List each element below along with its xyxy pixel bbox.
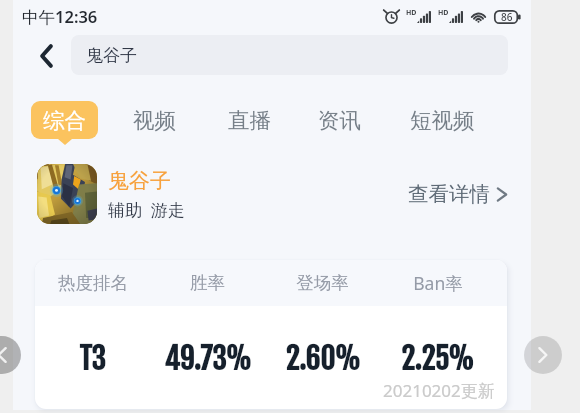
- staticText: 2.60%: [285, 341, 361, 377]
- button[interactable]: 资讯: [306, 101, 372, 139]
- staticText: 登场率: [296, 272, 349, 294]
- staticText: 综合: [43, 107, 86, 134]
- button[interactable]: 查看详情: [404, 173, 512, 215]
- staticText: HD: [438, 8, 449, 18]
- staticText: T3: [79, 341, 106, 377]
- staticText: 辅助 游走: [108, 198, 185, 221]
- staticText: 查看详情: [408, 181, 490, 207]
- button[interactable]: 鬼谷子: [71, 35, 508, 75]
- button[interactable]: Previous page: [0, 336, 21, 374]
- staticText: HD: [406, 8, 417, 18]
- staticText: 鬼谷子: [108, 168, 171, 194]
- staticText: 视频: [133, 107, 176, 134]
- button[interactable]: 视频: [122, 101, 186, 139]
- staticText: 86: [501, 10, 513, 24]
- button[interactable]: 短视频: [399, 101, 486, 139]
- button[interactable]: 鬼谷子 hero avatar: [37, 164, 97, 224]
- staticText: 2.25%: [401, 341, 474, 377]
- button[interactable]: 综合: [31, 101, 98, 145]
- staticText: 胜率: [190, 272, 225, 294]
- staticText: 短视频: [410, 107, 475, 134]
- button[interactable]: Back: [24, 33, 69, 78]
- staticText: 20210202更新: [383, 379, 495, 402]
- staticText: 中午12:36: [22, 5, 98, 28]
- button[interactable]: 直播: [215, 101, 283, 139]
- staticText: Ban率: [413, 271, 463, 295]
- staticText: 鬼谷子: [86, 45, 137, 66]
- staticText: 资讯: [318, 107, 361, 134]
- button[interactable]: Next page: [524, 336, 562, 374]
- staticText: 49.73%: [164, 341, 252, 377]
- staticText: 热度排名: [58, 272, 128, 294]
- staticText: 直播: [228, 107, 271, 134]
